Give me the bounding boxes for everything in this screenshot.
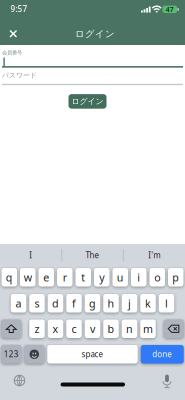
button[interactable]: k bbox=[140, 294, 156, 312]
staticText: d bbox=[52, 296, 59, 310]
button[interactable]: space bbox=[47, 345, 138, 363]
staticText: a bbox=[15, 296, 21, 310]
button[interactable]: n bbox=[122, 319, 137, 338]
button[interactable]: y bbox=[94, 268, 109, 286]
staticText: c bbox=[71, 322, 76, 336]
button[interactable] bbox=[164, 319, 184, 338]
staticText: g bbox=[89, 296, 96, 310]
button[interactable]: c bbox=[66, 319, 82, 338]
button[interactable]: パスワード bbox=[0, 68, 185, 85]
staticText: y bbox=[99, 270, 104, 284]
staticText: l bbox=[165, 296, 168, 310]
button[interactable]: t bbox=[75, 268, 91, 286]
button[interactable]: r bbox=[57, 268, 72, 286]
staticText: w bbox=[24, 270, 32, 284]
staticText: v bbox=[90, 322, 95, 336]
button[interactable]: f bbox=[66, 294, 82, 312]
button[interactable]: 会員番号 bbox=[0, 45, 185, 68]
staticText: The bbox=[85, 250, 99, 260]
button[interactable]: m bbox=[140, 319, 156, 338]
staticText: 123 bbox=[4, 349, 19, 359]
staticText: t bbox=[81, 270, 85, 284]
button[interactable]: u bbox=[112, 268, 128, 286]
staticText: q bbox=[6, 270, 13, 284]
staticText: done bbox=[152, 349, 172, 359]
button[interactable] bbox=[0, 0, 27, 45]
staticText: x bbox=[52, 322, 58, 336]
staticText: space bbox=[81, 349, 103, 359]
staticText: I bbox=[29, 250, 32, 260]
staticText: r bbox=[63, 270, 67, 284]
button[interactable]: h bbox=[103, 294, 119, 312]
button[interactable]: The bbox=[62, 244, 123, 266]
staticText: i bbox=[137, 270, 140, 284]
button[interactable]: l bbox=[159, 294, 174, 312]
staticText: m bbox=[143, 322, 153, 336]
staticText: e bbox=[43, 270, 49, 284]
button[interactable]: ログイン bbox=[68, 94, 106, 109]
button[interactable]: q bbox=[1, 268, 17, 286]
staticText: b bbox=[107, 322, 114, 336]
staticText: p bbox=[172, 270, 179, 284]
staticText: 9:57 bbox=[10, 4, 27, 14]
button[interactable]: I'm bbox=[124, 244, 185, 266]
button[interactable]: p bbox=[168, 268, 183, 286]
button[interactable] bbox=[24, 345, 44, 363]
button[interactable]: z bbox=[29, 319, 45, 338]
button[interactable]: d bbox=[48, 294, 63, 312]
button[interactable]: j bbox=[122, 294, 137, 312]
staticText: n bbox=[126, 322, 133, 336]
button[interactable]: i bbox=[131, 268, 146, 286]
button[interactable]: 123 bbox=[1, 345, 21, 363]
staticText: u bbox=[117, 270, 124, 284]
button[interactable] bbox=[1, 319, 21, 338]
button[interactable]: w bbox=[20, 268, 35, 286]
staticText: f bbox=[72, 296, 76, 310]
staticText: 会員番号 bbox=[2, 49, 22, 56]
staticText: k bbox=[145, 296, 151, 310]
button[interactable]: done bbox=[141, 345, 184, 363]
button[interactable] bbox=[162, 374, 171, 388]
staticText: 47 bbox=[166, 5, 174, 14]
staticText: z bbox=[34, 322, 39, 336]
staticText: ログイン bbox=[71, 96, 103, 106]
button[interactable]: x bbox=[48, 319, 63, 338]
staticText: o bbox=[154, 270, 160, 284]
staticText: s bbox=[34, 296, 39, 310]
staticText: I'm bbox=[148, 250, 160, 260]
staticText: j bbox=[128, 296, 131, 310]
button[interactable]: a bbox=[11, 294, 26, 312]
button[interactable]: b bbox=[103, 319, 119, 338]
button[interactable]: v bbox=[85, 319, 100, 338]
button[interactable]: s bbox=[29, 294, 45, 312]
button[interactable] bbox=[14, 375, 25, 386]
button[interactable]: o bbox=[149, 268, 165, 286]
staticText: ログイン bbox=[75, 28, 115, 40]
staticText: h bbox=[107, 296, 114, 310]
button[interactable]: I bbox=[0, 244, 61, 266]
staticText: パスワード bbox=[2, 71, 37, 79]
button[interactable]: e bbox=[38, 268, 54, 286]
button[interactable]: g bbox=[85, 294, 100, 312]
